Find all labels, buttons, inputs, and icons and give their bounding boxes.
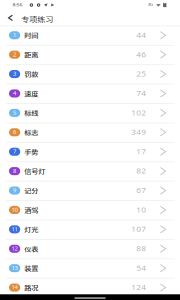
button[interactable]: 8 [0, 161, 180, 181]
staticText: 3 [13, 70, 16, 78]
button[interactable]: 14 [0, 278, 180, 297]
staticText: 标志 [24, 127, 38, 137]
button[interactable]: 1 [0, 25, 180, 45]
button[interactable]: Back [0, 12, 18, 26]
staticText: 罚款 [24, 69, 38, 79]
staticText: 1 [13, 31, 16, 39]
staticText: 349 [131, 127, 146, 138]
staticText: 4 [13, 89, 16, 97]
staticText: 记分 [24, 185, 38, 196]
staticText: 时间 [24, 30, 38, 40]
button[interactable]: 3 [0, 64, 180, 84]
button[interactable]: 5 [0, 103, 180, 123]
staticText: 装置 [24, 263, 38, 273]
staticText: 4G [148, 2, 153, 7]
staticText: 12 [12, 245, 18, 253]
button[interactable]: 6 [0, 123, 180, 142]
staticText: 仪表 [24, 243, 38, 254]
staticText: 107 [131, 224, 146, 235]
staticText: 67 [136, 185, 146, 196]
button[interactable]: 7 [0, 142, 180, 161]
staticText: 2 [13, 51, 16, 59]
staticText: 74 [136, 88, 146, 99]
staticText: 9 [13, 186, 16, 194]
button[interactable]: 12 [0, 239, 180, 258]
staticText: 124 [131, 282, 146, 293]
staticText: 信号灯 [24, 166, 45, 176]
staticText: 46 [136, 49, 146, 60]
button[interactable]: 2 [0, 45, 180, 64]
staticText: 灯光 [24, 224, 38, 234]
button[interactable]: 13 [0, 258, 180, 278]
staticText: 7 [13, 148, 16, 156]
staticText: 54 [136, 262, 146, 274]
staticText: 路况 [24, 282, 38, 293]
staticText: 25 [136, 68, 146, 80]
button[interactable]: 10 [0, 200, 180, 220]
staticText: 17 [136, 146, 146, 157]
staticText: 44 [136, 30, 146, 41]
staticText: 专项练习 [21, 13, 53, 25]
staticText: 距离 [24, 49, 38, 60]
staticText: 10 [12, 206, 18, 214]
staticText: 8:56 [13, 1, 23, 8]
staticText: 6 [13, 128, 16, 136]
staticText: 11 [12, 225, 18, 233]
staticText: 速度 [24, 88, 38, 99]
staticText: 5 [13, 109, 16, 117]
staticText: 8 [13, 167, 16, 175]
staticText: 手势 [24, 146, 38, 157]
staticText: 82 [136, 165, 146, 177]
staticText: 10 [136, 204, 146, 216]
staticText: 酒驾 [24, 205, 38, 215]
staticText: 88 [136, 243, 146, 254]
staticText: 13 [12, 264, 18, 272]
button[interactable]: 11 [0, 220, 180, 239]
staticText: 14 [12, 284, 18, 292]
staticText: 标线 [24, 108, 38, 118]
button[interactable]: 9 [0, 181, 180, 200]
button[interactable]: 4 [0, 84, 180, 103]
staticText: 102 [131, 107, 146, 119]
